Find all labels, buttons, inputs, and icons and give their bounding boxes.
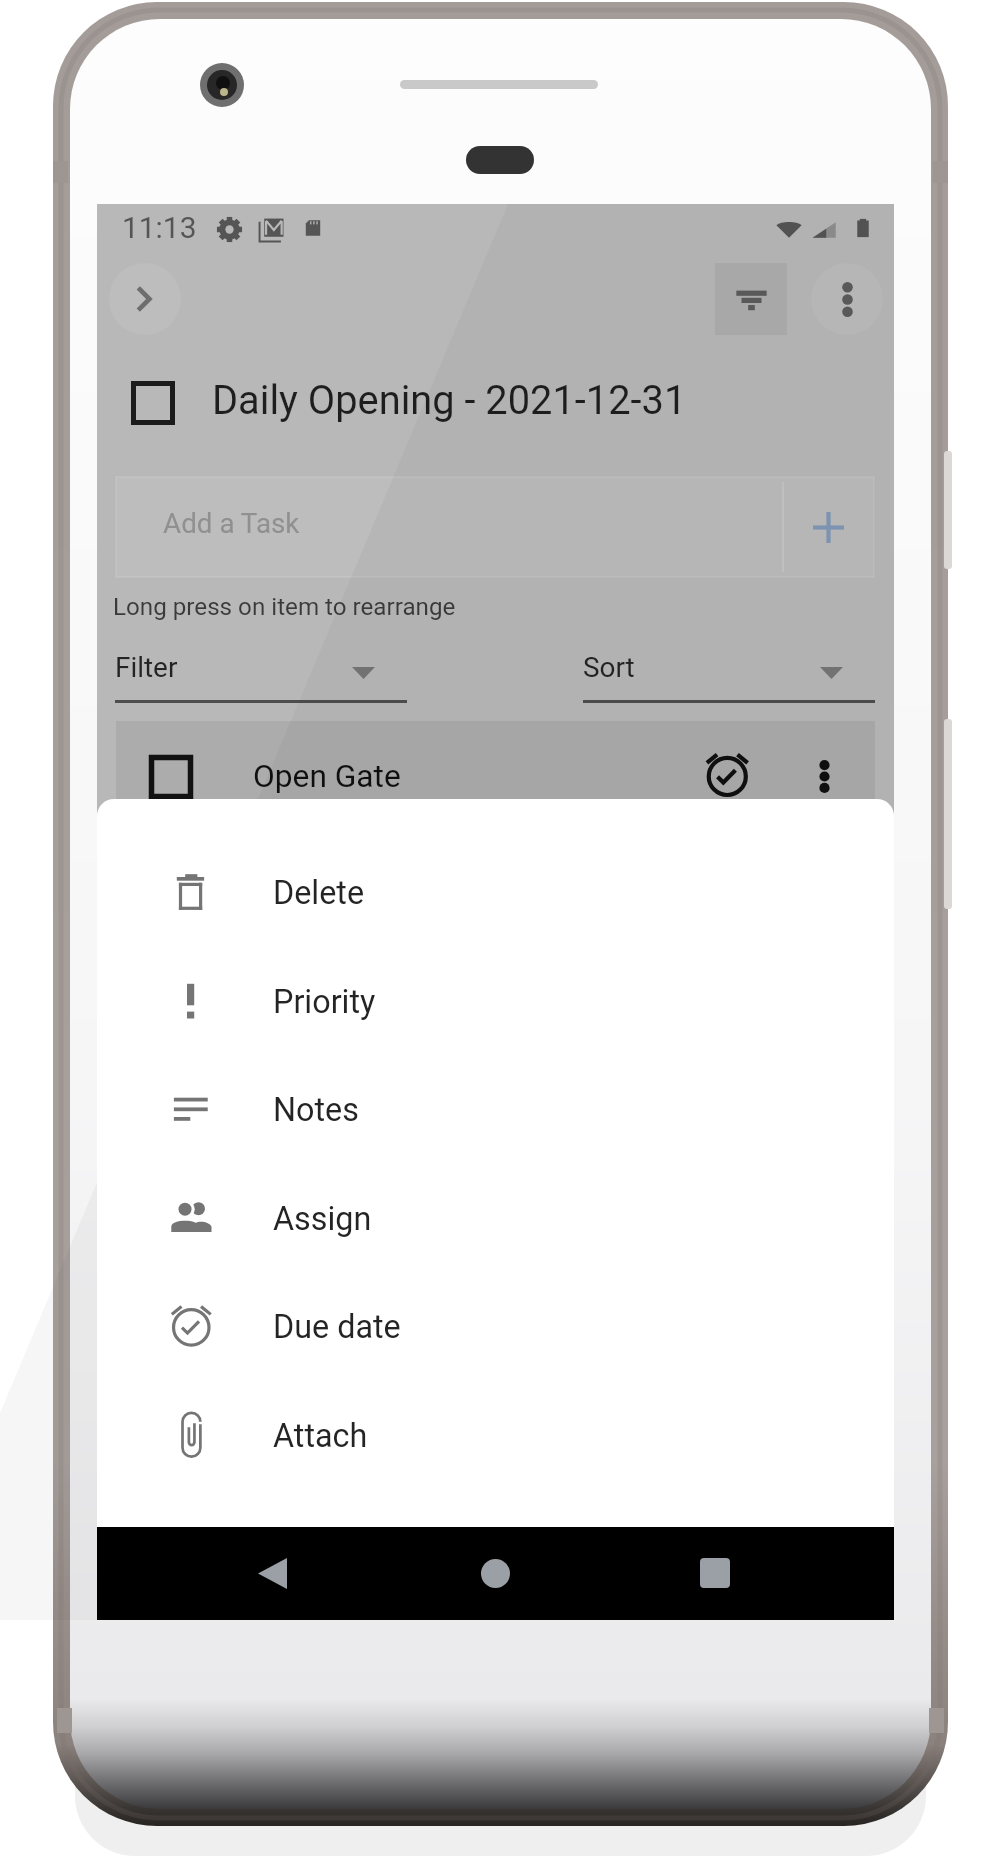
- button[interactable]: More options: [811, 263, 883, 335]
- staticText: Sort: [583, 651, 635, 684]
- button[interactable]: Add task: [783, 477, 874, 577]
- staticText: Priority: [273, 983, 376, 1021]
- button[interactable]: [97, 947, 894, 1056]
- button[interactable]: Filter: [715, 263, 787, 335]
- button[interactable]: Filter tasks: [115, 637, 407, 705]
- button[interactable]: Expand: [109, 263, 181, 335]
- button[interactable]: Recents: [685, 1543, 745, 1603]
- button[interactable]: Home: [465, 1543, 525, 1603]
- staticText: Due date: [273, 1308, 401, 1346]
- staticText: Add a Task: [163, 507, 300, 540]
- button[interactable]: [97, 1055, 894, 1164]
- button[interactable]: Sort tasks: [583, 637, 875, 705]
- staticText: Delete: [273, 874, 365, 912]
- button[interactable]: [97, 1272, 894, 1381]
- staticText: Notes: [273, 1091, 359, 1129]
- staticText: Filter: [115, 651, 178, 684]
- staticText: Open Gate: [253, 758, 401, 795]
- button[interactable]: [116, 721, 875, 820]
- button[interactable]: [97, 1381, 894, 1490]
- staticText: 11:13: [122, 210, 197, 245]
- button[interactable]: [97, 1164, 894, 1273]
- button[interactable]: [97, 838, 894, 947]
- button[interactable]: Back: [242, 1543, 302, 1603]
- staticText: Long press on item to rearrange: [113, 593, 456, 621]
- staticText: Attach: [273, 1417, 368, 1455]
- staticText: Assign: [273, 1200, 372, 1238]
- staticText: Daily Opening - 2021-12-31: [212, 377, 687, 424]
